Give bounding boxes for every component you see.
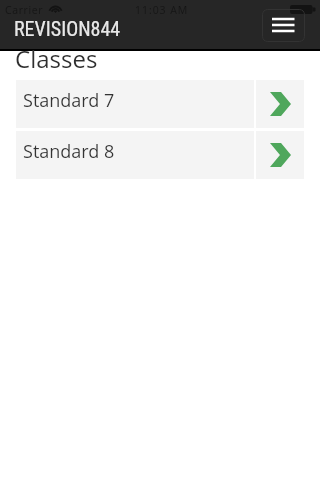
staticText: Standard 7	[23, 88, 115, 113]
button[interactable]: Standard 8	[16, 131, 304, 179]
staticText: 11:03 AM	[135, 3, 189, 17]
staticText: Standard 8	[23, 139, 115, 164]
button[interactable]: Standard 7	[16, 80, 304, 128]
staticText: REVISION844	[14, 17, 121, 40]
staticText: Carrier	[5, 3, 44, 17]
button[interactable]: Menu	[262, 9, 305, 42]
staticText: Classes	[15, 42, 98, 75]
